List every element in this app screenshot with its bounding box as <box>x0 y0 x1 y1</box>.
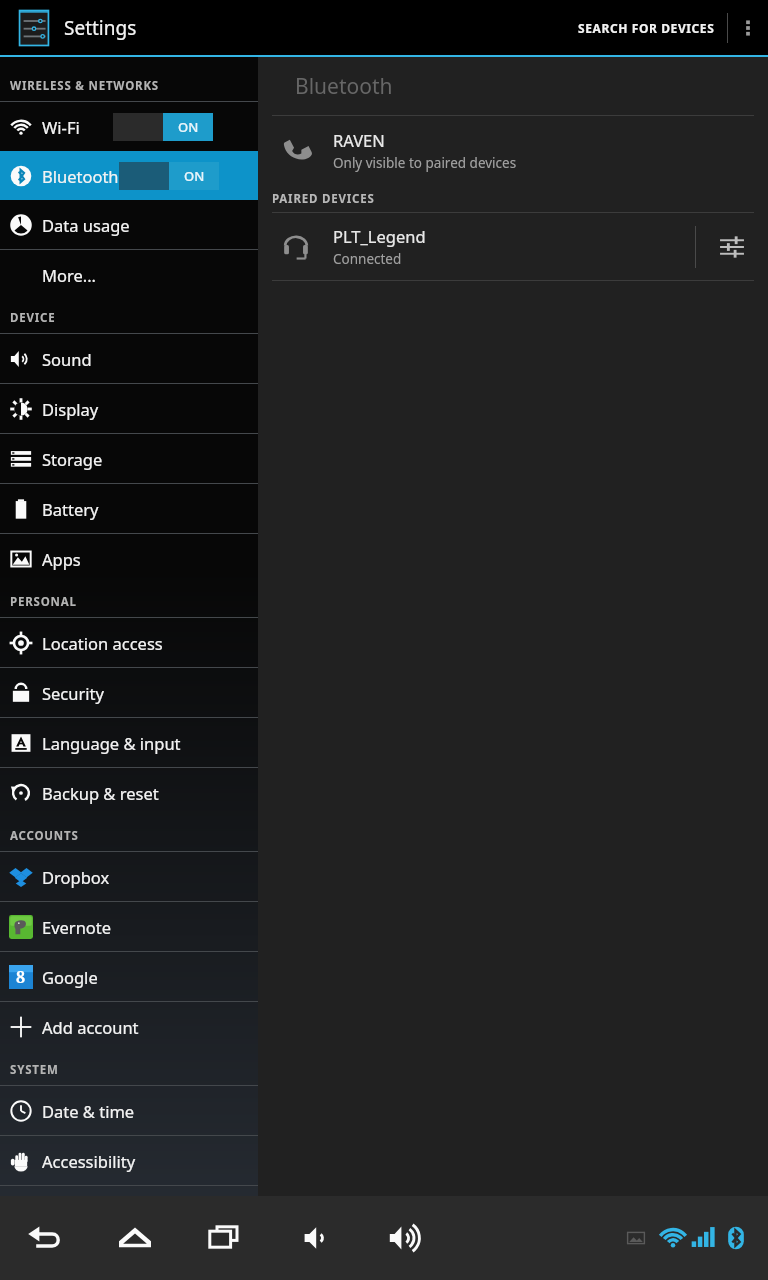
staticText: 8 <box>16 966 26 988</box>
button[interactable]: Display <box>0 384 258 433</box>
button[interactable]: Volume up <box>374 1196 436 1280</box>
staticText: Display <box>42 398 99 420</box>
button[interactable]: Device settings <box>696 213 768 280</box>
staticText: WIRELESS & NETWORKS <box>10 78 159 94</box>
staticText: Battery <box>42 498 99 520</box>
staticText: RAVEN <box>333 129 385 151</box>
staticText: Location access <box>42 632 163 654</box>
staticText: Security <box>42 682 104 704</box>
staticText: Settings <box>64 15 137 41</box>
button[interactable]: SEARCH FOR DEVICES <box>566 0 727 55</box>
staticText: Google <box>42 966 98 988</box>
button[interactable]: Security <box>0 668 258 717</box>
button[interactable]: RAVEN <box>258 116 768 184</box>
staticText: PERSONAL <box>10 594 77 610</box>
staticText: ACCOUNTS <box>10 828 79 844</box>
staticText: Dropbox <box>42 866 110 888</box>
button[interactable]: Settings <box>14 8 54 48</box>
staticText: Date & time <box>42 1100 135 1122</box>
button[interactable]: Backup & reset <box>0 768 258 817</box>
button[interactable]: More options <box>728 0 768 55</box>
staticText: Data usage <box>42 214 130 236</box>
button[interactable]: Sound <box>0 334 258 383</box>
button[interactable]: Location access <box>0 618 258 667</box>
button[interactable]: Language & input <box>0 718 258 767</box>
button[interactable]: Home <box>104 1196 166 1280</box>
button[interactable]: Apps <box>0 534 258 583</box>
staticText: More... <box>42 264 97 286</box>
button[interactable]: Storage <box>0 434 258 483</box>
button[interactable]: Evernote <box>0 902 258 951</box>
staticText: Evernote <box>42 916 112 938</box>
button[interactable]: Dropbox <box>0 852 258 901</box>
staticText: SYSTEM <box>10 1062 59 1078</box>
button[interactable]: Add account <box>0 1002 258 1051</box>
button[interactable]: Battery <box>0 484 258 533</box>
staticText: PAIRED DEVICES <box>272 191 375 207</box>
staticText: Accessibility <box>42 1150 136 1172</box>
button[interactable]: Wi-Fi <box>0 102 258 151</box>
staticText: DEVICE <box>10 310 56 326</box>
staticText: ON <box>178 118 199 136</box>
staticText: ON <box>184 167 205 185</box>
button[interactable]: Accessibility <box>0 1136 258 1185</box>
staticText: Only visible to paired devices <box>333 154 517 172</box>
staticText: SEARCH FOR DEVICES <box>578 20 715 36</box>
staticText: Connected <box>333 250 402 268</box>
staticText: Backup & reset <box>42 782 159 804</box>
button[interactable]: 8 <box>0 952 258 1001</box>
button[interactable]: Bluetooth <box>0 151 258 200</box>
staticText: PLT_Legend <box>333 225 426 247</box>
button[interactable]: PLT_Legend <box>258 213 695 280</box>
button[interactable]: Data usage <box>0 200 258 249</box>
button[interactable]: Date & time <box>0 1086 258 1135</box>
staticText: Language & input <box>42 732 181 754</box>
staticText: Storage <box>42 448 103 470</box>
staticText: Add account <box>42 1016 139 1038</box>
button[interactable]: Back <box>14 1196 76 1280</box>
button[interactable]: Volume down <box>284 1196 346 1280</box>
staticText: Bluetooth <box>42 165 119 187</box>
staticText: Wi-Fi <box>42 116 80 138</box>
staticText: Bluetooth <box>295 72 393 101</box>
staticText: Sound <box>42 348 92 370</box>
button[interactable]: Recent apps <box>194 1196 256 1280</box>
staticText: Apps <box>42 548 81 570</box>
button[interactable]: More... <box>0 250 258 299</box>
